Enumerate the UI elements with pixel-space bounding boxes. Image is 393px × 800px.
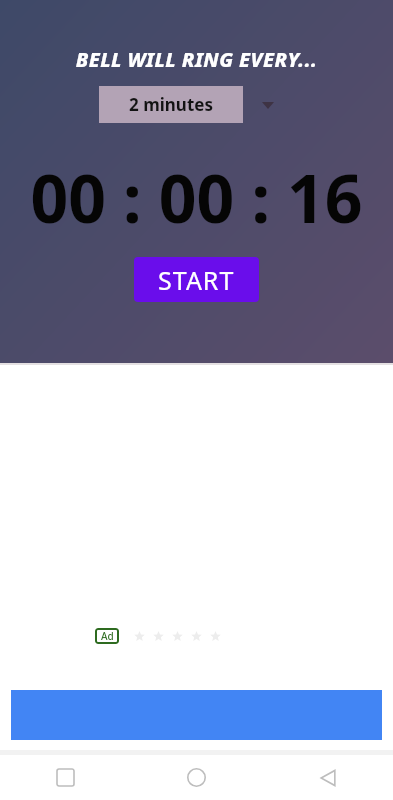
staticText: 2 minutes bbox=[129, 93, 213, 116]
staticText: Ad bbox=[101, 629, 114, 643]
staticText: BELL WILL RING EVERY... bbox=[0, 46, 393, 73]
staticText: 00 : 00 : 16 bbox=[0, 152, 393, 242]
staticText: START bbox=[158, 263, 235, 297]
button[interactable]: Recent apps bbox=[0, 755, 131, 800]
button[interactable]: Back bbox=[262, 755, 393, 800]
button[interactable]: Home bbox=[131, 755, 262, 800]
button[interactable]: START bbox=[134, 257, 259, 302]
button[interactable]: 2 minutes bbox=[99, 86, 277, 123]
